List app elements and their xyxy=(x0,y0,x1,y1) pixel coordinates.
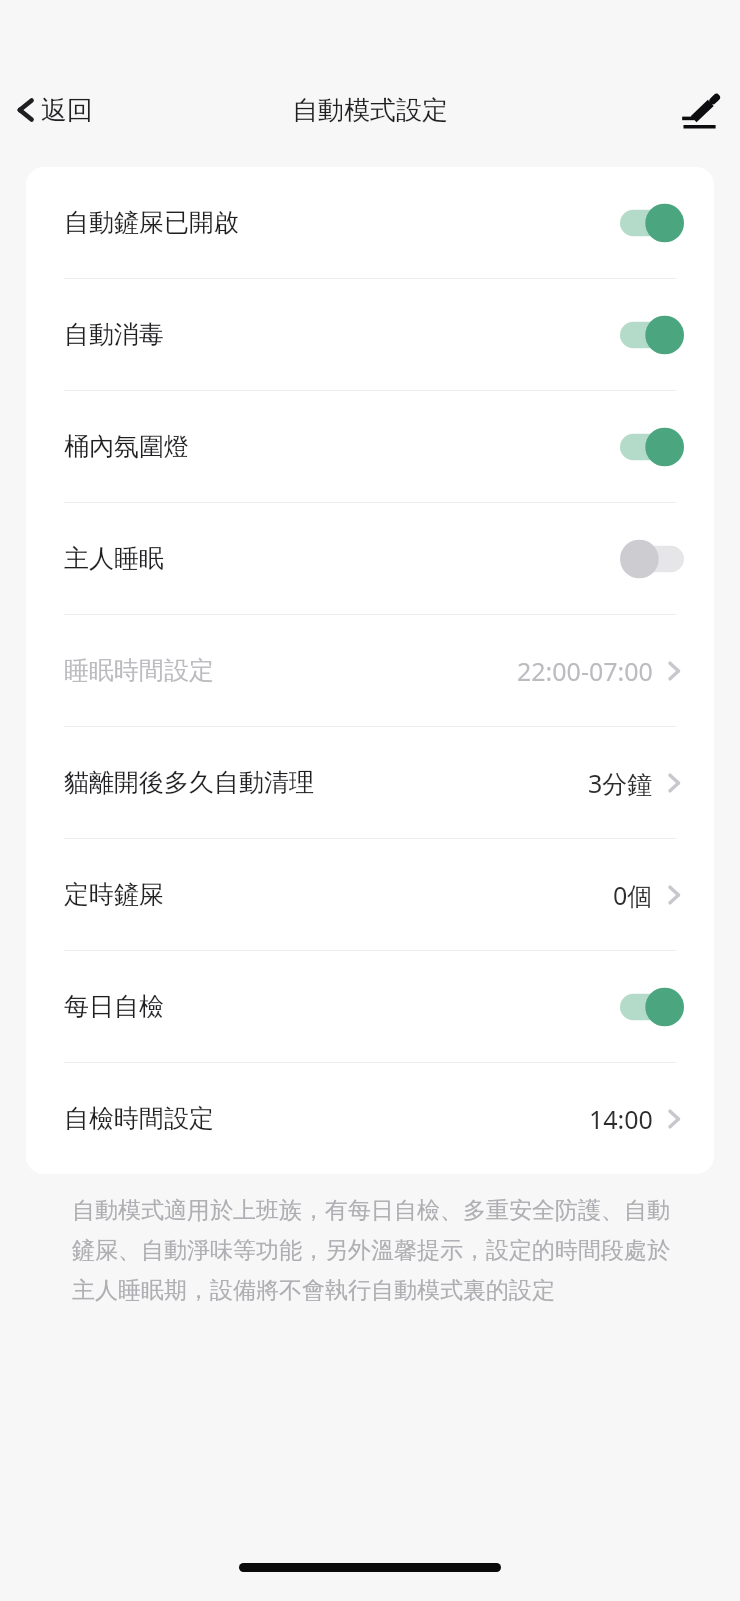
other: On xyxy=(620,201,684,245)
other: On xyxy=(620,313,684,357)
other: On xyxy=(620,985,684,1029)
button[interactable]: Edit xyxy=(656,74,740,146)
staticText: 每日自檢 xyxy=(64,991,164,1022)
other: On xyxy=(620,425,684,469)
staticText: 14:00 xyxy=(589,1102,653,1136)
staticText: 自檢時間設定 xyxy=(64,1103,214,1134)
staticText: 貓離開後多久自動清理 xyxy=(64,767,314,798)
button[interactable]: 桶內氛圍燈 xyxy=(26,391,714,502)
button[interactable]: 主人睡眠 xyxy=(26,503,714,614)
button[interactable]: 自檢時間設定 xyxy=(26,1063,714,1174)
staticText: 返回 xyxy=(41,94,93,127)
staticText: 桶內氛圍燈 xyxy=(64,431,189,462)
staticText: 自動鏟屎已開啟 xyxy=(64,207,239,238)
staticText: 0個 xyxy=(613,878,653,912)
staticText: 自動消毒 xyxy=(64,319,164,350)
other: Off xyxy=(620,537,684,581)
staticText: 定時鏟屎 xyxy=(64,879,164,910)
button[interactable]: 自動鏟屎已開啟 xyxy=(26,167,714,278)
button[interactable]: 自動消毒 xyxy=(26,279,714,390)
staticText: 自動模式適用於上班族，有每日自檢、多重安全防護、自動鏟屎、自動淨味等功能，另外溫… xyxy=(72,1196,676,1305)
staticText: 自動模式設定 xyxy=(292,94,448,127)
button[interactable]: 每日自檢 xyxy=(26,951,714,1062)
staticText: 3分鐘 xyxy=(588,766,653,800)
button[interactable]: 睡眠時間設定 xyxy=(26,615,714,726)
button[interactable]: 返回 xyxy=(0,74,111,146)
staticText: 22:00-07:00 xyxy=(517,654,653,688)
button[interactable]: 定時鏟屎 xyxy=(26,839,714,950)
staticText: 主人睡眠 xyxy=(64,543,164,574)
button[interactable]: 貓離開後多久自動清理 xyxy=(26,727,714,838)
staticText: 睡眠時間設定 xyxy=(64,655,214,686)
